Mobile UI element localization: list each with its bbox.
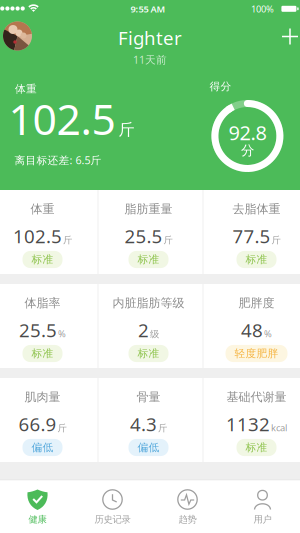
staticText: 脂肪重量 [124, 202, 172, 216]
button[interactable]: 脂肪重量 [98, 190, 202, 274]
staticText: 1132 [226, 412, 270, 436]
staticText: 得分 [209, 80, 231, 93]
staticText: 标准 [137, 253, 159, 266]
staticText: 斤 [57, 422, 66, 434]
staticText: 25.5 [19, 318, 57, 342]
staticText: 去脂体重 [232, 202, 280, 216]
staticText: 标准 [31, 347, 53, 360]
staticText: 斤 [158, 422, 167, 434]
button[interactable]: Add [282, 28, 298, 44]
staticText: 离目标还差: 6.5斤 [14, 153, 101, 167]
button[interactable]: 体脂率 [0, 284, 97, 368]
staticText: 标准 [245, 253, 267, 266]
staticText: 肌肉量 [24, 390, 60, 404]
staticText: 9:55 AM [130, 3, 165, 15]
staticText: 48 [241, 318, 263, 342]
staticText: 11天前 [133, 52, 167, 67]
staticText: 标准 [137, 347, 159, 360]
staticText: 体重 [30, 202, 54, 216]
button[interactable]: 内脏脂肪等级 [98, 284, 202, 368]
button[interactable]: Profile photo [3, 21, 32, 50]
staticText: 趋势 [178, 514, 196, 525]
staticText: 标准 [245, 441, 267, 454]
staticText: 偏低 [137, 441, 159, 454]
staticText: 2 [138, 318, 149, 342]
staticText: 斤 [271, 234, 280, 246]
staticText: 偏低 [31, 441, 53, 454]
button[interactable]: 体重 [0, 190, 97, 274]
button[interactable]: 基础代谢量 [203, 378, 300, 462]
button[interactable]: 历史记录 [75, 480, 150, 533]
button[interactable]: 趋势 [150, 480, 225, 533]
staticText: 用户 [253, 514, 271, 525]
staticText: 基础代谢量 [226, 390, 286, 404]
staticText: 体重 [15, 82, 37, 95]
staticText: 4.3 [130, 412, 157, 436]
staticText: 100% [251, 3, 274, 15]
staticText: 标准 [31, 253, 53, 266]
staticText: 骨量 [136, 390, 160, 404]
staticText: 66.9 [18, 412, 56, 436]
staticText: 轻度肥胖 [234, 347, 278, 360]
staticText: 斤 [163, 234, 172, 246]
staticText: 92.8 [228, 119, 266, 146]
staticText: 内脏脂肪等级 [112, 296, 184, 310]
staticText: 102.5 [13, 224, 62, 248]
staticText: 77.5 [232, 224, 270, 248]
staticText: 体脂率 [24, 296, 60, 310]
staticText: 历史记录 [94, 514, 130, 525]
staticText: % [58, 327, 66, 340]
staticText: 分 [241, 142, 254, 159]
staticText: 健康 [28, 514, 46, 525]
staticText: 25.5 [124, 224, 162, 248]
staticText: 斤 [63, 234, 72, 246]
staticText: 级 [150, 328, 159, 340]
staticText: Fighter [118, 25, 182, 50]
button[interactable]: 健康 [0, 480, 75, 533]
staticText: 肥胖度 [238, 296, 274, 310]
button[interactable]: 肌肉量 [0, 378, 97, 462]
button[interactable]: 用户 [225, 480, 300, 533]
staticText: kcal [271, 421, 287, 434]
staticText: % [264, 327, 272, 340]
button[interactable]: 去脂体重 [203, 190, 300, 274]
button[interactable]: 骨量 [98, 378, 202, 462]
button[interactable]: 肥胖度 [203, 284, 300, 368]
staticText: 102.5 [8, 90, 115, 147]
staticText: 斤 [118, 120, 134, 140]
